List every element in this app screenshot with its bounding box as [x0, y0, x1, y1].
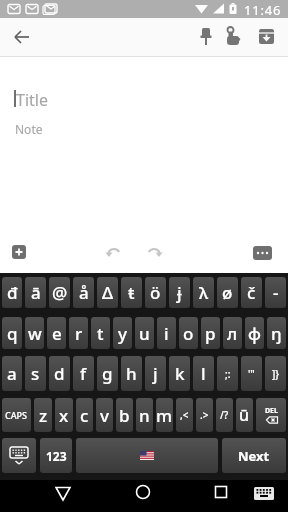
button[interactable]: CAPS	[2, 398, 31, 432]
button[interactable]: å	[73, 277, 94, 308]
staticText: y	[118, 322, 127, 345]
button[interactable]: đ	[2, 277, 22, 308]
button[interactable]: ф	[245, 317, 264, 349]
button[interactable]: p	[201, 317, 220, 349]
button[interactable]: -	[265, 277, 286, 308]
button[interactable]: ɉ	[169, 277, 190, 308]
button[interactable]: ø	[217, 277, 238, 308]
button[interactable]: ŧ	[121, 277, 142, 308]
button[interactable]: n	[136, 398, 153, 432]
button[interactable]: a	[2, 356, 22, 391]
staticText: s	[31, 362, 40, 385]
staticText: v	[100, 404, 109, 427]
button[interactable]: t	[91, 317, 110, 349]
button[interactable]: l	[193, 356, 214, 391]
button[interactable]: u	[135, 317, 154, 349]
button[interactable]	[49, 480, 77, 508]
button[interactable]: b	[116, 398, 133, 432]
staticText: k	[175, 362, 185, 385]
staticText: ,<	[180, 408, 189, 422]
staticText: l	[201, 362, 206, 385]
button[interactable]: ;:	[217, 356, 238, 391]
staticText: ŧ	[128, 281, 135, 304]
button[interactable]	[129, 480, 157, 508]
button[interactable]: z	[34, 398, 52, 432]
button[interactable]: č	[241, 277, 262, 308]
staticText: CAPS	[5, 409, 28, 421]
staticText: Note	[15, 121, 43, 137]
button[interactable]	[8, 23, 36, 51]
button[interactable]: '"	[241, 356, 262, 391]
button[interactable]: .>	[196, 398, 213, 432]
button[interactable]: 123	[40, 438, 72, 473]
staticText: 11:46	[244, 1, 282, 19]
staticText: b	[119, 404, 130, 427]
staticText: ф	[248, 322, 261, 345]
button[interactable]: /?	[216, 398, 233, 432]
button[interactable]	[105, 244, 123, 260]
staticText: t	[97, 322, 104, 345]
staticText: q	[7, 322, 18, 345]
button[interactable]: Next	[222, 438, 286, 473]
staticText: h	[126, 362, 137, 385]
button[interactable]: j	[145, 356, 166, 391]
button[interactable]	[2, 438, 36, 473]
button[interactable]	[12, 245, 26, 259]
staticText: ö	[150, 281, 161, 304]
staticText: ā	[31, 281, 41, 304]
button[interactable]	[252, 483, 276, 507]
button[interactable]: ŋ	[267, 317, 286, 349]
staticText: ū	[239, 404, 250, 426]
staticText: .>	[200, 408, 209, 422]
button[interactable]	[76, 438, 218, 473]
staticText: DEL	[265, 406, 278, 416]
staticText: Next	[238, 447, 270, 465]
staticText: đ	[7, 281, 18, 304]
button[interactable]: m	[156, 398, 173, 432]
button[interactable]	[207, 480, 235, 508]
button[interactable]: e	[47, 317, 66, 349]
button[interactable]: d	[49, 356, 70, 391]
button[interactable]	[145, 244, 163, 260]
button[interactable]: r	[69, 317, 88, 349]
staticText: g	[102, 362, 113, 385]
button[interactable]: o	[179, 317, 198, 349]
button[interactable]: q	[2, 317, 22, 349]
button[interactable]: Δ	[97, 277, 118, 308]
button[interactable]: ,<	[176, 398, 193, 432]
button[interactable]: y	[113, 317, 132, 349]
button[interactable]: i	[157, 317, 176, 349]
button[interactable]	[253, 246, 272, 260]
button[interactable]: v	[96, 398, 113, 432]
staticText: Title	[16, 89, 48, 111]
button[interactable]	[218, 23, 246, 51]
button[interactable]: s	[25, 356, 46, 391]
button[interactable]: @	[49, 277, 70, 308]
button[interactable]	[192, 23, 220, 51]
button[interactable]: ā	[25, 277, 46, 308]
staticText: č	[247, 281, 256, 304]
button[interactable]: c	[76, 398, 93, 432]
staticText: ŋ	[271, 322, 282, 345]
button[interactable]: f	[73, 356, 94, 391]
button[interactable]: ū	[236, 398, 253, 432]
button[interactable]: h	[121, 356, 142, 391]
button[interactable]: л	[223, 317, 242, 349]
button[interactable]: λ	[193, 277, 214, 308]
staticText: л	[227, 322, 238, 345]
button[interactable]: w	[25, 317, 44, 349]
button[interactable]	[252, 23, 280, 51]
button[interactable]: x	[55, 398, 73, 432]
staticText: z	[39, 404, 48, 427]
staticText: e	[52, 322, 62, 345]
button[interactable]: g	[97, 356, 118, 391]
staticText: r	[75, 322, 83, 345]
button[interactable]: ]}	[265, 356, 286, 391]
staticText: i	[164, 322, 169, 345]
staticText: d	[54, 362, 65, 385]
button[interactable]: DEL	[256, 398, 286, 432]
staticText: '"	[248, 367, 255, 381]
button[interactable]: k	[169, 356, 190, 391]
staticText: p	[205, 322, 216, 345]
button[interactable]: ö	[145, 277, 166, 308]
